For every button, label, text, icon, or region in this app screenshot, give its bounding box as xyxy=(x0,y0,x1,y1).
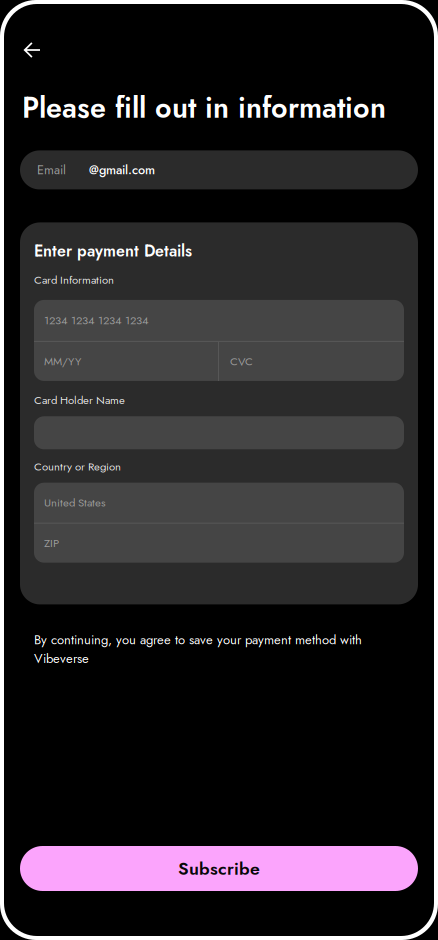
staticText: Please fill out in information xyxy=(22,87,386,128)
staticText: @gmail.com xyxy=(89,161,155,179)
staticText: Card Information xyxy=(34,271,114,288)
staticText: 1234 1234 1234 1234 xyxy=(44,312,149,329)
staticText: Card Holder Name xyxy=(34,392,125,408)
staticText: ZIP xyxy=(44,535,59,551)
staticText: Country or Region xyxy=(34,458,121,475)
staticText: Enter payment Details xyxy=(34,239,192,262)
staticText: Email xyxy=(37,161,66,179)
staticText: CVC xyxy=(230,353,253,370)
button[interactable]: Subscribe xyxy=(0,846,438,891)
staticText: Subscribe xyxy=(178,856,260,881)
staticText: United States xyxy=(44,494,106,511)
button[interactable]: Back xyxy=(15,35,49,65)
staticText: By continuing, you agree to save your pa… xyxy=(34,630,362,668)
staticText: MM/YY xyxy=(44,353,81,370)
button[interactable]: Email xyxy=(0,150,438,189)
